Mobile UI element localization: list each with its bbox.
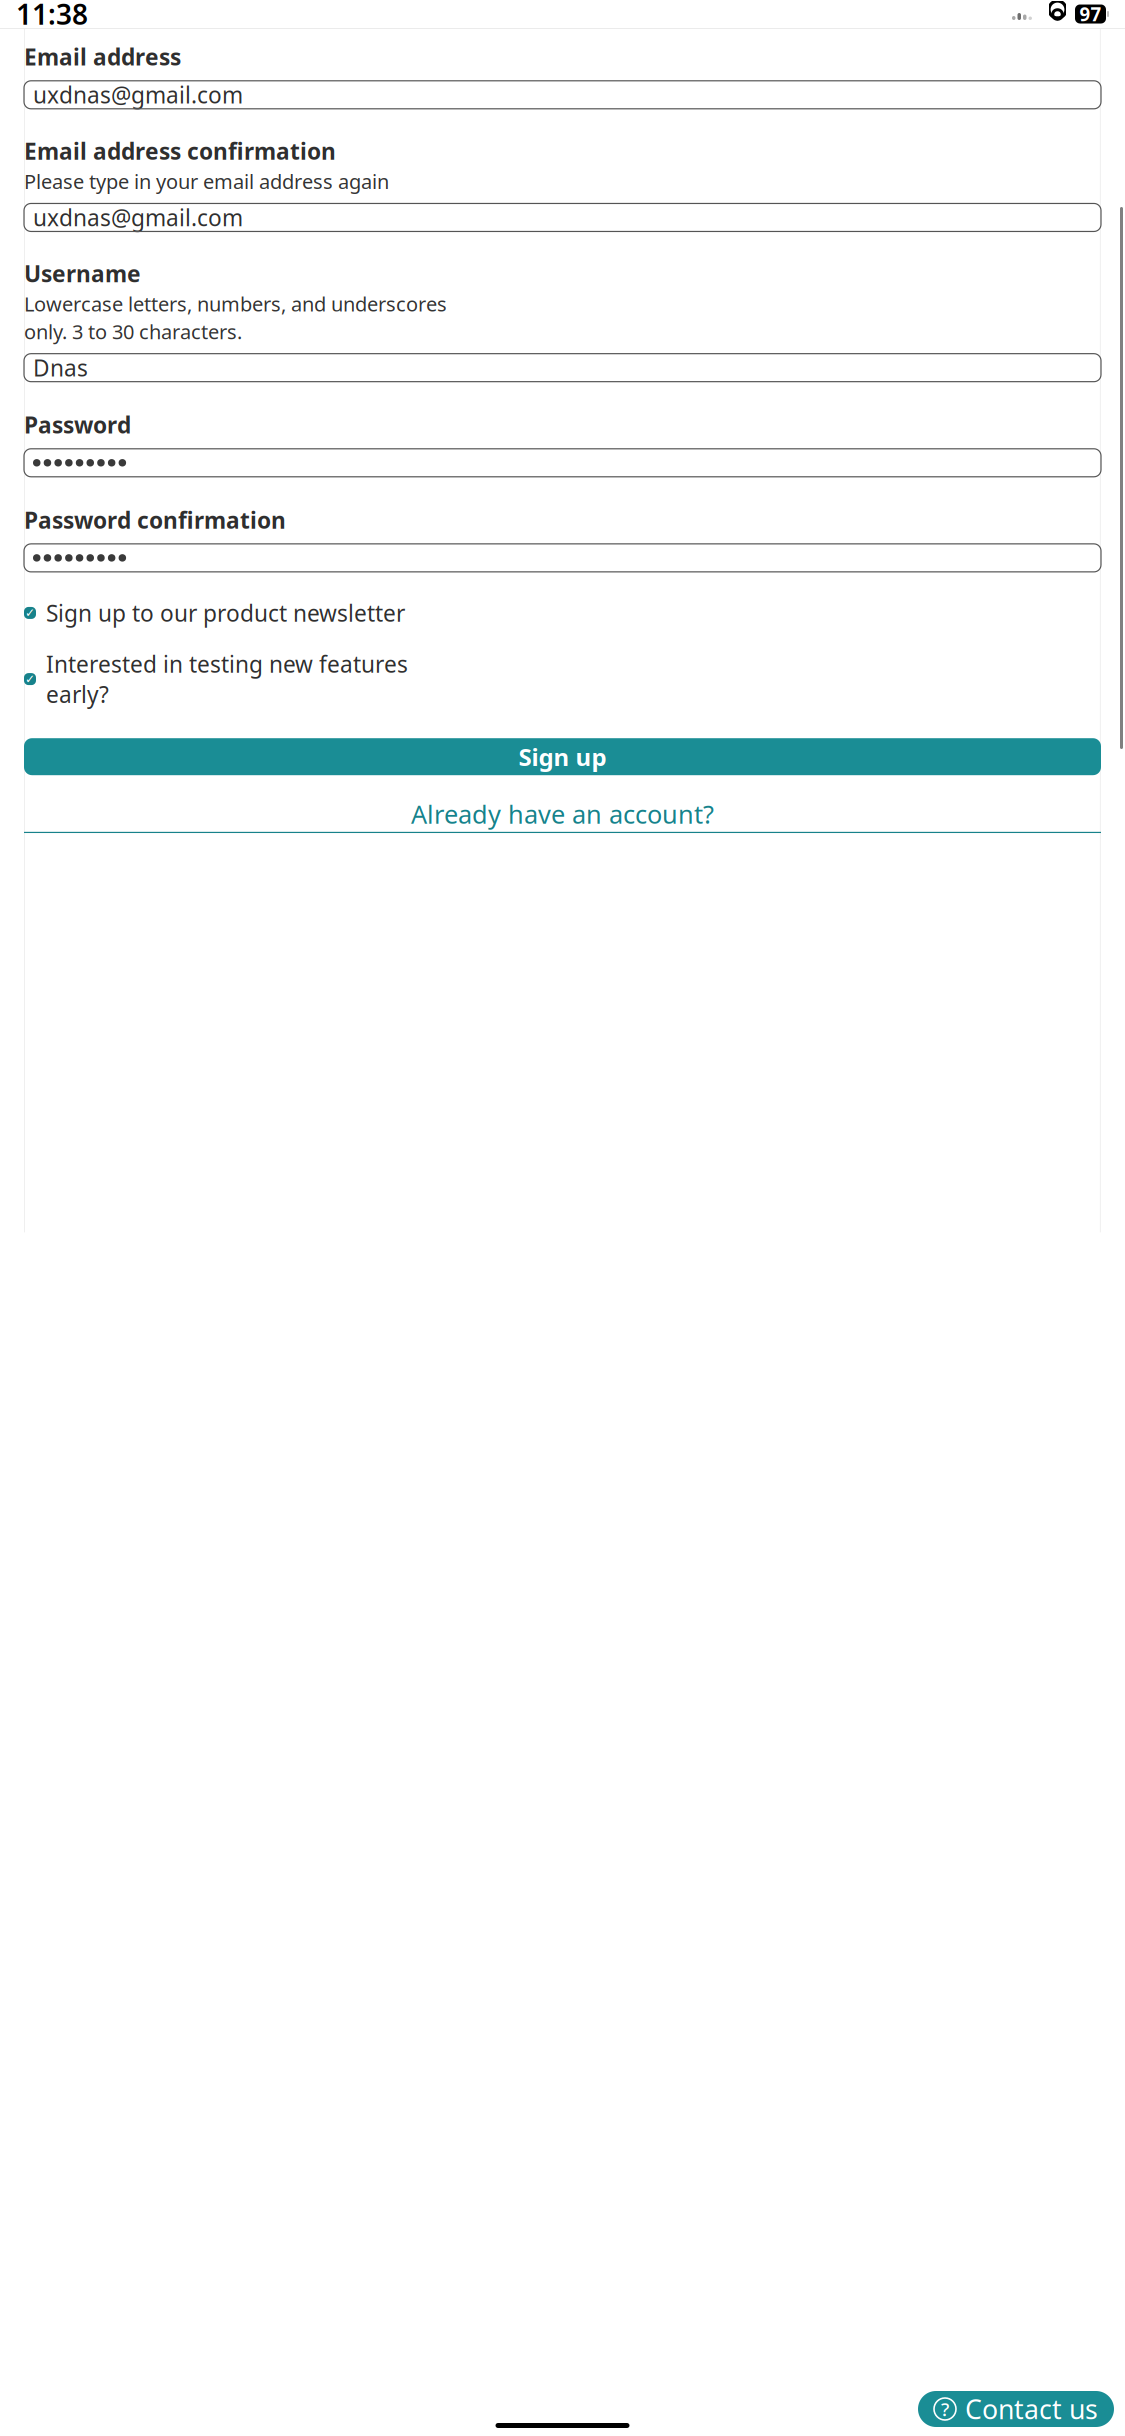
staticText: ?	[941, 2397, 949, 2421]
staticText: Password confirmation	[24, 505, 286, 535]
staticText: only. 3 to 30 characters.	[24, 318, 242, 345]
button[interactable]: Already have an account?	[24, 797, 1101, 833]
staticText: early?	[46, 679, 109, 709]
button[interactable]: ?	[918, 2391, 1114, 2427]
button[interactable]: Sign up	[24, 738, 1101, 775]
staticText: Interested in testing new features	[46, 649, 408, 679]
staticText: Email address confirmation	[24, 136, 336, 166]
staticText: Sign up to our product newsletter	[46, 598, 405, 628]
staticText: Sign up	[518, 741, 606, 773]
staticText: uxdnas@gmail.com	[33, 202, 243, 232]
staticText: Username	[24, 258, 141, 289]
button[interactable]: ✓	[24, 598, 1101, 628]
staticText: 11:38	[16, 0, 88, 33]
staticText: uxdnas@gmail.com	[33, 80, 243, 110]
staticText: Password	[24, 410, 131, 440]
staticText: 97	[1079, 2, 1101, 26]
staticText: ✓	[25, 606, 35, 620]
staticText: Please type in your email address again	[24, 168, 389, 194]
staticText: Email address	[24, 42, 181, 72]
staticText: Dnas	[33, 353, 88, 383]
staticText: Already have an account?	[411, 797, 714, 831]
button[interactable]: ✓	[24, 649, 1101, 709]
staticText: Contact us	[965, 2391, 1098, 2427]
staticText: ✓	[25, 672, 35, 686]
staticText: Lowercase letters, numbers, and undersco…	[24, 291, 447, 317]
